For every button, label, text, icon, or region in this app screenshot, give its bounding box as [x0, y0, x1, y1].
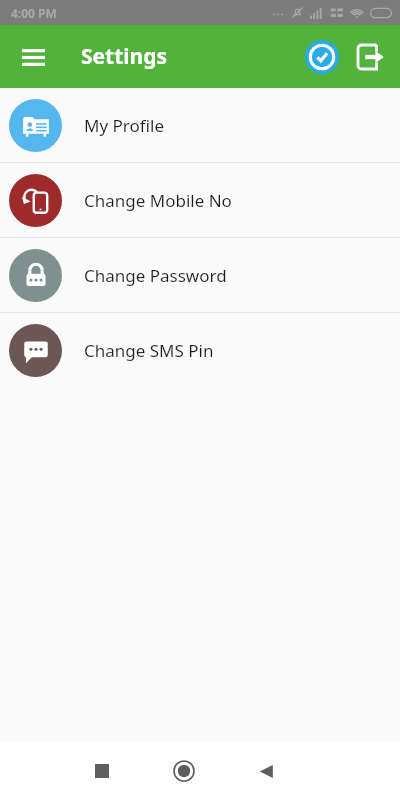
button[interactable]: Back — [242, 747, 290, 795]
button[interactable]: Open navigation menu — [10, 34, 56, 80]
button[interactable]: Change Mobile No — [0, 163, 400, 237]
staticText: Change SMS Pin — [84, 339, 214, 362]
staticText: My Profile — [84, 114, 164, 137]
button[interactable]: Home — [160, 747, 208, 795]
button[interactable]: My Profile — [0, 88, 400, 162]
button[interactable]: Change SMS Pin — [0, 313, 400, 387]
staticText: Change Password — [84, 264, 227, 287]
button[interactable]: Recent apps — [78, 747, 126, 795]
staticText: Settings — [81, 42, 168, 71]
button[interactable]: Log out — [349, 36, 391, 78]
staticText: 4:00 PM — [11, 5, 57, 21]
button[interactable]: Confirm — [301, 36, 343, 78]
staticText: Change Mobile No — [84, 189, 232, 212]
button[interactable]: Change Password — [0, 238, 400, 312]
